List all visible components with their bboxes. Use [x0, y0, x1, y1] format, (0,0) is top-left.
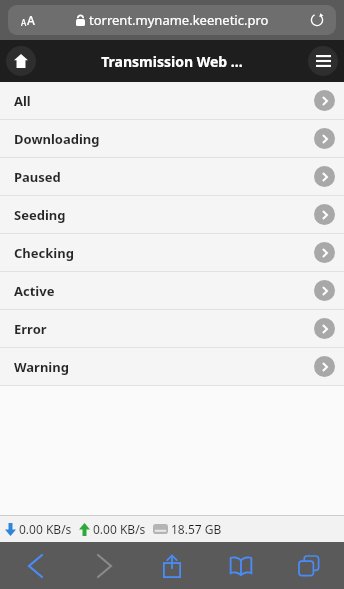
- staticText: Error: [14, 320, 47, 338]
- button[interactable]: Menu: [308, 46, 338, 76]
- button[interactable]: Share: [149, 544, 195, 588]
- button[interactable]: Reload: [305, 8, 329, 32]
- staticText: A: [27, 12, 35, 28]
- button[interactable]: Back: [12, 544, 58, 588]
- button[interactable]: Tabs: [286, 544, 332, 588]
- button[interactable]: Home: [6, 46, 36, 76]
- staticText: All: [14, 92, 31, 110]
- staticText: 0.00 KB/s: [19, 521, 72, 537]
- button[interactable]: All: [0, 82, 344, 119]
- staticText: Transmission Web …: [36, 52, 308, 71]
- staticText: Downloading: [14, 130, 100, 148]
- staticText: A: [21, 17, 27, 28]
- button[interactable]: Forward: [81, 544, 127, 588]
- staticText: Active: [14, 282, 55, 300]
- staticText: Paused: [14, 168, 61, 186]
- staticText: torrent.myname.keenetic.pro: [89, 11, 269, 29]
- staticText: 18.57 GB: [171, 521, 222, 537]
- staticText: Warning: [14, 358, 69, 376]
- button[interactable]: Warning: [0, 348, 344, 385]
- button[interactable]: Active: [0, 272, 344, 309]
- button[interactable]: Bookmarks: [218, 544, 264, 588]
- button[interactable]: Text size: [15, 9, 41, 31]
- button[interactable]: Seeding: [0, 196, 344, 233]
- staticText: 0.00 KB/s: [93, 521, 146, 537]
- button[interactable]: Checking: [0, 234, 344, 271]
- staticText: Checking: [14, 244, 74, 262]
- button[interactable]: Paused: [0, 158, 344, 195]
- staticText: Seeding: [14, 206, 66, 224]
- button[interactable]: Downloading: [0, 120, 344, 157]
- button[interactable]: Text size: [8, 5, 336, 35]
- button[interactable]: Error: [0, 310, 344, 347]
